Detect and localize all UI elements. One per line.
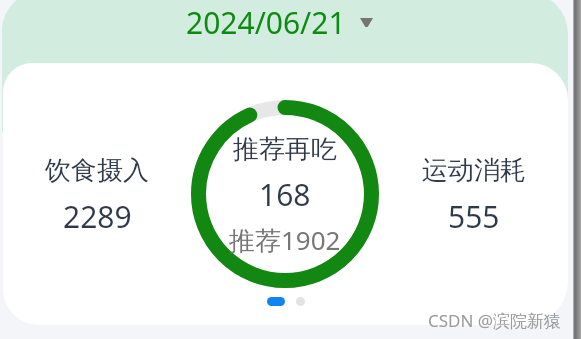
- button[interactable]: 2024/06/21: [186, 2, 373, 43]
- staticText: 饮食摄入: [45, 154, 149, 187]
- staticText: CSDN @滨院新猿: [428, 309, 562, 332]
- staticText: 168: [259, 174, 311, 215]
- staticText: 运动消耗: [422, 154, 526, 187]
- staticText: 555: [448, 196, 500, 237]
- staticText: 2024/06/21: [186, 2, 346, 43]
- staticText: 推荐1902: [229, 222, 341, 258]
- staticText: 推荐再吃: [233, 133, 337, 166]
- other: Select date: [360, 18, 373, 27]
- button[interactable]: 饮食摄入: [3, 63, 568, 325]
- staticText: 2289: [63, 196, 132, 237]
